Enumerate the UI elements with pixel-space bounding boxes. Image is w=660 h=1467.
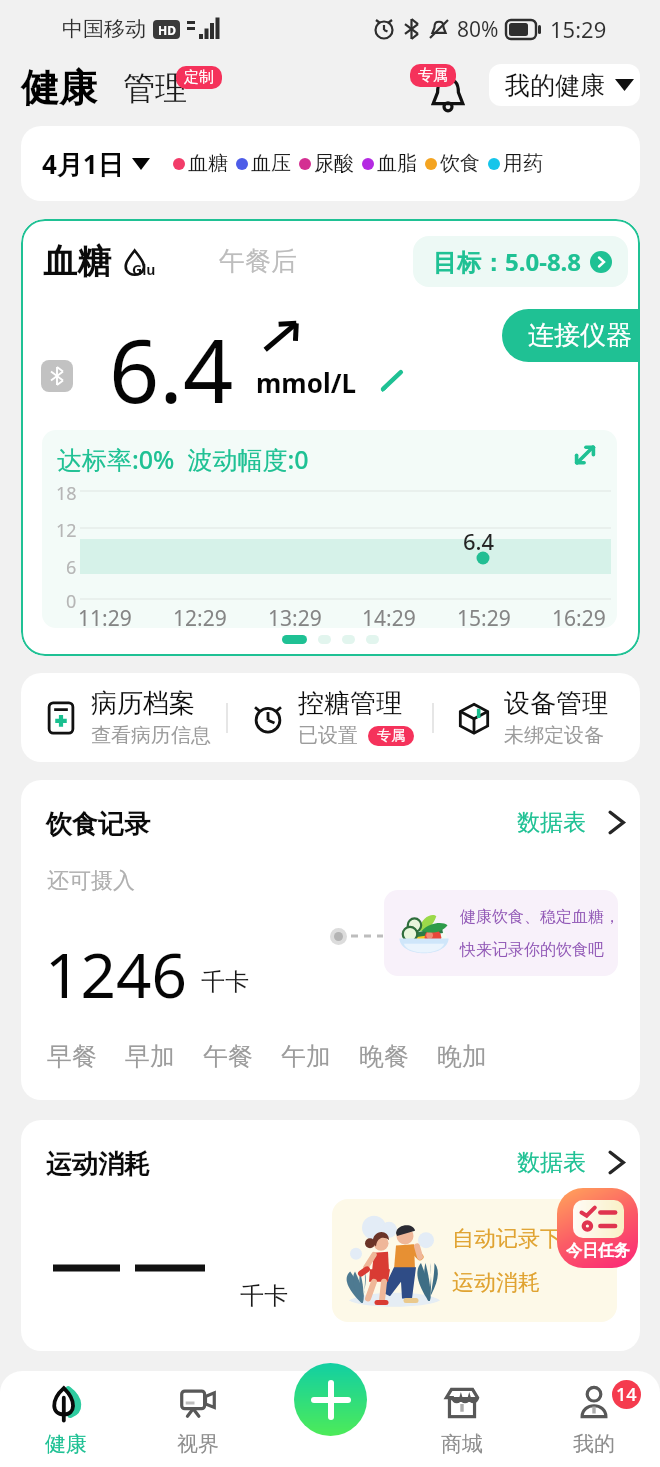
button[interactable]: 晚餐 bbox=[359, 1041, 409, 1072]
staticText: 数据表 bbox=[517, 1148, 586, 1177]
staticText: HD bbox=[158, 22, 176, 38]
button[interactable]: 今日任务 bbox=[557, 1188, 638, 1268]
button[interactable]: 晚加 bbox=[437, 1041, 487, 1072]
button[interactable]: Expand chart bbox=[570, 440, 600, 470]
staticText: 查看病历信息 bbox=[91, 723, 211, 748]
staticText: 运动消耗 bbox=[46, 1148, 150, 1181]
staticText: 专属 bbox=[377, 727, 405, 745]
staticText: 16:29 bbox=[552, 604, 606, 628]
staticText: 18 bbox=[56, 481, 77, 506]
staticText: 千卡 bbox=[240, 1281, 288, 1311]
button[interactable]: Edit value bbox=[379, 367, 405, 393]
staticText: 中国移动 bbox=[62, 16, 146, 42]
staticText: 尿酸 bbox=[314, 151, 354, 176]
staticText: 控糖管理 bbox=[298, 687, 402, 720]
button[interactable]: 连接仪器 bbox=[502, 309, 640, 362]
button[interactable]: 我的健康 bbox=[489, 64, 640, 106]
staticText: 午加 bbox=[281, 1041, 331, 1072]
staticText: 达标率:0% 波动幅度:0 bbox=[57, 442, 309, 476]
staticText: 健康 bbox=[45, 1431, 87, 1457]
staticText: 11:29 bbox=[78, 604, 132, 628]
staticText: 0 bbox=[66, 589, 77, 614]
button[interactable]: 健康 bbox=[0, 1371, 132, 1467]
staticText: 千卡 bbox=[201, 967, 249, 997]
staticText: 定制 bbox=[184, 68, 214, 87]
staticText: 晚加 bbox=[437, 1041, 487, 1072]
staticText: 15:29 bbox=[550, 14, 607, 44]
staticText: 健康 bbox=[21, 64, 97, 112]
staticText: 早加 bbox=[125, 1041, 175, 1072]
staticText: 13:29 bbox=[268, 604, 322, 628]
staticText: 1246 bbox=[45, 932, 187, 1016]
staticText: 血压 bbox=[251, 151, 291, 176]
button[interactable]: 血脂 bbox=[362, 151, 417, 176]
button[interactable]: 病历档案 bbox=[21, 673, 226, 762]
button[interactable]: Notifications bbox=[424, 68, 472, 116]
button[interactable]: 健康饮食、稳定血糖， bbox=[384, 890, 618, 976]
staticText: 早餐 bbox=[47, 1041, 97, 1072]
staticText: 我的 bbox=[573, 1431, 615, 1457]
staticText: 病历档案 bbox=[91, 687, 195, 720]
staticText: 12 bbox=[56, 518, 77, 543]
button[interactable]: 早餐 bbox=[47, 1041, 97, 1072]
button[interactable]: 午加 bbox=[281, 1041, 331, 1072]
staticText: 管理 bbox=[123, 68, 187, 108]
staticText: 设备管理 bbox=[504, 687, 608, 720]
staticText: 健康饮食、稳定血糖， bbox=[460, 907, 618, 927]
button[interactable]: 自动记录下您每日 bbox=[332, 1199, 617, 1322]
staticText: 还可摄入 bbox=[47, 867, 135, 895]
staticText: 血糖 bbox=[188, 151, 228, 176]
staticText: 6.4 bbox=[109, 309, 234, 429]
button[interactable]: 数据表 bbox=[511, 802, 632, 843]
button[interactable]: 午餐 bbox=[203, 1041, 253, 1072]
staticText: 自动记录下您每日 bbox=[452, 1225, 617, 1253]
staticText: 午餐 bbox=[203, 1041, 253, 1072]
button[interactable]: 早加 bbox=[125, 1041, 175, 1072]
button[interactable]: 设备管理 bbox=[434, 673, 640, 762]
staticText: 80% bbox=[457, 15, 499, 44]
staticText: 连接仪器 bbox=[528, 319, 632, 352]
button[interactable]: 4月1日 bbox=[42, 146, 150, 182]
button[interactable]: 用药 bbox=[488, 151, 543, 176]
staticText: 运动消耗 bbox=[452, 1269, 540, 1297]
staticText: 饮食 bbox=[440, 151, 480, 176]
button[interactable]: 血压 bbox=[236, 151, 291, 176]
staticText: 视界 bbox=[177, 1431, 219, 1457]
staticText: 血脂 bbox=[377, 151, 417, 176]
staticText: 商城 bbox=[441, 1431, 483, 1457]
button[interactable]: 血糖 bbox=[173, 151, 228, 176]
button[interactable]: Add record bbox=[294, 1363, 367, 1436]
staticText: 快来记录你的饮食吧 bbox=[460, 940, 604, 960]
staticText: 晚餐 bbox=[359, 1041, 409, 1072]
staticText: 我的健康 bbox=[505, 70, 605, 101]
staticText: 用药 bbox=[503, 151, 543, 176]
staticText: 饮食记录 bbox=[46, 808, 150, 841]
staticText: 15:29 bbox=[457, 604, 511, 628]
button[interactable]: 视界 bbox=[132, 1371, 264, 1467]
staticText: 目标：5.0-8.8 bbox=[433, 245, 582, 278]
button[interactable]: 控糖管理 bbox=[228, 673, 432, 762]
staticText: 今日任务 bbox=[566, 1241, 630, 1261]
staticText: 未绑定设备 bbox=[504, 723, 604, 748]
staticText: mmol/L bbox=[256, 365, 357, 400]
button[interactable]: 目标：5.0-8.8 bbox=[413, 236, 628, 287]
button[interactable]: 饮食 bbox=[425, 151, 480, 176]
button[interactable]: 尿酸 bbox=[299, 151, 354, 176]
staticText: 14 bbox=[616, 1382, 637, 1407]
button[interactable]: 商城 bbox=[396, 1371, 528, 1467]
staticText: 血糖 bbox=[43, 240, 111, 283]
staticText: 14:29 bbox=[362, 604, 416, 628]
button[interactable]: 数据表 bbox=[511, 1142, 632, 1183]
staticText: 6 bbox=[66, 555, 77, 580]
staticText: 午餐后 bbox=[219, 245, 297, 278]
staticText: 数据表 bbox=[517, 808, 586, 837]
staticText: Glu bbox=[132, 260, 156, 279]
button[interactable]: 14 bbox=[528, 1371, 660, 1467]
staticText: 6.4 bbox=[463, 526, 495, 556]
staticText: 12:29 bbox=[173, 604, 227, 628]
staticText: 专属 bbox=[418, 66, 448, 85]
staticText: 已设置 bbox=[298, 723, 358, 748]
staticText: 4月1日 bbox=[42, 146, 124, 182]
